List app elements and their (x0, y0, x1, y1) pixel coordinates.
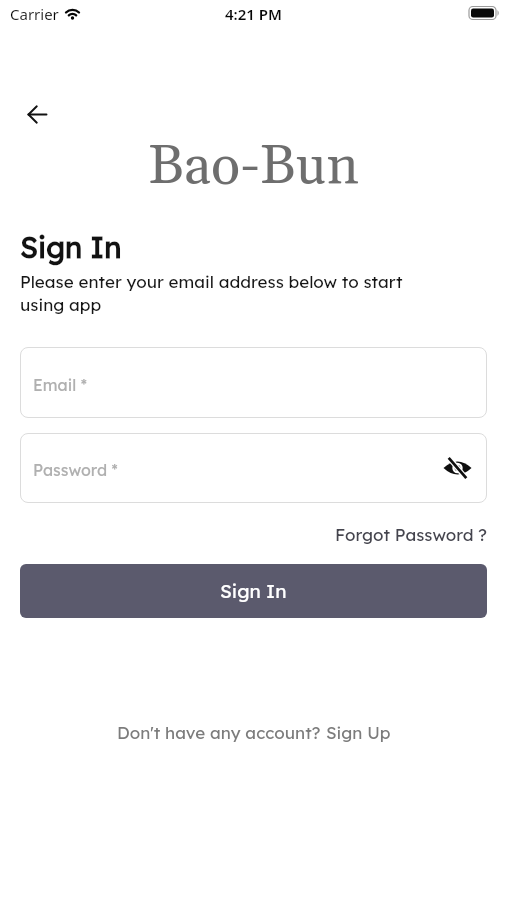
staticText: Carrier (10, 4, 59, 24)
button[interactable]: Sign Up (326, 722, 391, 743)
staticText: Bao-Bun (0, 133, 507, 202)
staticText: Email * (33, 375, 87, 395)
staticText: Password * (33, 460, 118, 480)
button[interactable] (441, 452, 473, 484)
staticText: Please enter your email address below to… (20, 271, 403, 316)
staticText: Sign In (220, 579, 287, 603)
button[interactable]: Forgot Password ? (335, 524, 487, 545)
staticText: 4:21 PM (225, 4, 282, 24)
button[interactable]: Password * (20, 433, 487, 503)
button[interactable]: Sign In (20, 564, 487, 618)
button[interactable]: Email * (20, 347, 487, 418)
staticText: Sign In (20, 229, 122, 265)
button[interactable] (19, 96, 56, 133)
staticText: Don't have any account? (117, 722, 326, 743)
